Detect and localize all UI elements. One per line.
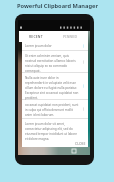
button[interactable]: occaecat cupidatat non proident, sunt in… [22,100,88,118]
staticText: Lorem ipsum dolor sit amet, consectetur … [25,122,79,140]
button[interactable]: More options [82,84,85,88]
staticText: RECENT [29,34,43,39]
staticText: Lorem ipsum dolor [25,44,52,48]
staticText: PINNED [63,34,78,39]
button[interactable]: More options [82,44,85,48]
button[interactable]: PINNED [53,31,88,42]
staticText: CLOSE [75,141,86,146]
button[interactable]: RECENT [19,31,53,42]
staticText: Ut enim ad minim veniam, quis nostrud ex… [25,54,79,72]
button[interactable]: Lorem ipsum dolor [22,42,88,50]
button[interactable]: Recent apps [72,149,76,153]
button[interactable]: CLOSE [75,141,86,146]
staticText: Powerful Clipboard Manager [17,2,98,10]
button[interactable]: Ut enim ad minim veniam, quis nostrud ex… [22,51,88,72]
staticText: Nulla aute irure dolor in reprehenderit … [25,76,79,99]
button[interactable]: More options [82,107,85,111]
staticText: occaecat cupidatat non proident, sunt in… [25,103,79,116]
button[interactable]: Nulla aute irure dolor in reprehenderit … [22,73,88,99]
button[interactable]: More options [82,60,85,64]
